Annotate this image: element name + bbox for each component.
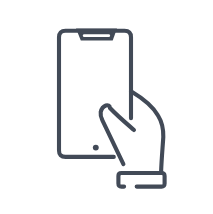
button[interactable]: Tap the phone screen	[0, 0, 213, 214]
